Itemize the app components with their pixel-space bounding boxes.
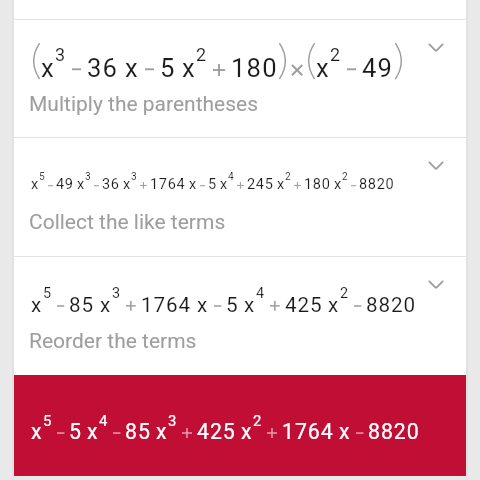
staticText: x	[189, 176, 197, 193]
button[interactable]: Expand step	[422, 33, 450, 61]
staticText: x	[31, 176, 39, 193]
staticText: 8820	[366, 293, 417, 317]
staticText: 2	[330, 44, 341, 65]
staticText: x	[182, 53, 196, 83]
button[interactable]: Expand step	[422, 151, 450, 179]
staticText: 8820	[368, 419, 420, 444]
button[interactable]: x	[14, 375, 466, 476]
staticText: 85	[69, 293, 95, 317]
staticText: 2	[285, 171, 291, 183]
staticText: x	[125, 53, 139, 83]
staticText: 3	[112, 285, 121, 302]
staticText: 5	[69, 419, 82, 444]
staticText: x	[77, 176, 85, 193]
staticText: x	[334, 176, 342, 193]
staticText: x	[87, 419, 99, 444]
button[interactable]: x	[14, 257, 466, 375]
staticText: 4	[99, 412, 108, 429]
staticText: 5	[43, 285, 52, 302]
staticText: 180	[304, 176, 331, 193]
staticText: 85	[125, 419, 151, 444]
staticText: 1764	[282, 419, 334, 444]
staticText: x	[123, 176, 131, 193]
button[interactable]: x	[14, 20, 466, 137]
staticText: 3	[85, 171, 91, 183]
staticText: 5	[226, 293, 239, 317]
staticText: x	[31, 293, 43, 317]
staticText: x	[100, 293, 112, 317]
staticText: 8820	[359, 176, 395, 193]
staticText: 49	[56, 176, 74, 193]
staticText: 3	[168, 412, 177, 429]
staticText: 5	[43, 412, 52, 429]
staticText: x	[277, 176, 285, 193]
button[interactable]: Expand step	[422, 270, 450, 298]
staticText: 36	[102, 176, 120, 193]
staticText: x	[328, 293, 340, 317]
staticText: 2	[253, 412, 262, 429]
staticText: 2	[196, 44, 207, 65]
staticText: x	[41, 53, 55, 83]
staticText: 4	[228, 171, 234, 183]
staticText: x	[241, 419, 253, 444]
staticText: x	[316, 53, 330, 83]
staticText: 5	[39, 171, 45, 183]
staticText: 1764	[150, 176, 186, 193]
staticText: 5	[208, 176, 217, 193]
staticText: 180	[231, 53, 278, 83]
staticText: x	[244, 293, 256, 317]
staticText: x	[31, 419, 43, 444]
staticText: x	[197, 293, 209, 317]
staticText: 4	[256, 285, 265, 302]
staticText: Collect the like terms	[29, 210, 226, 235]
button[interactable]: x	[14, 138, 466, 256]
staticText: x	[156, 419, 168, 444]
staticText: 3	[131, 171, 137, 183]
staticText: 425	[197, 419, 236, 444]
staticText: 245	[247, 176, 274, 193]
staticText: 2	[340, 285, 349, 302]
staticText: 1764	[141, 293, 192, 317]
staticText: 5	[160, 53, 176, 83]
staticText: 425	[285, 293, 323, 317]
staticText: 49	[362, 53, 394, 83]
staticText: Reorder the terms	[29, 329, 197, 354]
staticText: x	[220, 176, 228, 193]
staticText: 3	[55, 44, 66, 65]
staticText: 2	[342, 171, 348, 183]
staticText: Multiply the parentheses	[29, 92, 259, 117]
staticText: 36	[87, 53, 119, 83]
staticText: x	[339, 419, 351, 444]
